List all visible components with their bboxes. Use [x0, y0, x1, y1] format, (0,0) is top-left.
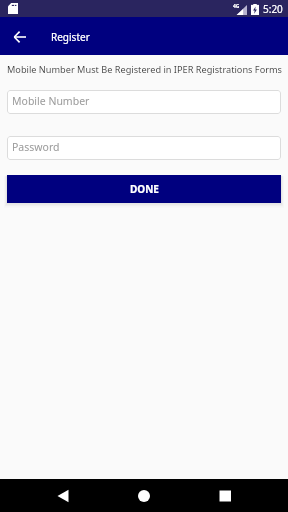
staticText: Mobile Number Must Be Registered in IPER… [7, 63, 282, 76]
staticText: Register [51, 30, 90, 44]
button[interactable]: Recent apps [208, 479, 242, 512]
staticText: 5:20 [263, 2, 283, 16]
staticText: 4G [233, 3, 240, 10]
button[interactable]: DONE [7, 175, 281, 203]
button[interactable]: Back [46, 479, 80, 512]
button[interactable]: Password [7, 136, 281, 160]
button[interactable]: Back [8, 24, 32, 48]
staticText: Mobile Number [12, 94, 90, 108]
button[interactable]: Home [127, 479, 161, 512]
button[interactable]: Mobile Number [7, 90, 281, 114]
staticText: DONE [130, 182, 159, 196]
staticText: Password [12, 140, 60, 154]
